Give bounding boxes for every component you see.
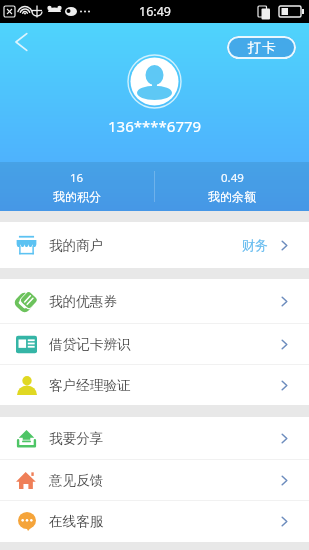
button[interactable]: 我要分享 xyxy=(0,417,309,459)
staticText: 借贷记卡辨识 xyxy=(49,336,131,353)
staticText: 在线客服 xyxy=(49,513,104,530)
staticText: 客户经理验证 xyxy=(49,377,131,394)
staticText: 0.49 xyxy=(221,170,244,186)
staticText: 财务 xyxy=(242,237,269,254)
staticText: 我的优惠券 xyxy=(49,293,117,310)
staticText: 我要分享 xyxy=(49,430,104,447)
button[interactable]: 意见反馈 xyxy=(0,460,309,500)
staticText: 意见反馈 xyxy=(49,472,104,489)
button[interactable]: 我的商户 xyxy=(0,222,309,268)
staticText: 136****6779 xyxy=(108,116,202,136)
staticText: 我的积分 xyxy=(53,189,101,204)
button[interactable]: 在线客服 xyxy=(0,501,309,542)
staticText: 我的商户 xyxy=(49,237,104,254)
button[interactable]: 借贷记卡辨识 xyxy=(0,324,309,364)
button[interactable]: 打卡 xyxy=(227,36,296,59)
staticText: 16 xyxy=(70,170,84,186)
staticText: 我的余额 xyxy=(208,189,256,204)
button[interactable]: Back xyxy=(6,27,36,57)
button[interactable]: 0.49 xyxy=(155,162,309,211)
staticText: 打卡 xyxy=(247,39,276,56)
staticText: 16:49 xyxy=(139,3,171,20)
button[interactable]: 客户经理验证 xyxy=(0,365,309,405)
button[interactable]: 我的优惠券 xyxy=(0,279,309,323)
button[interactable]: 16 xyxy=(0,162,154,211)
